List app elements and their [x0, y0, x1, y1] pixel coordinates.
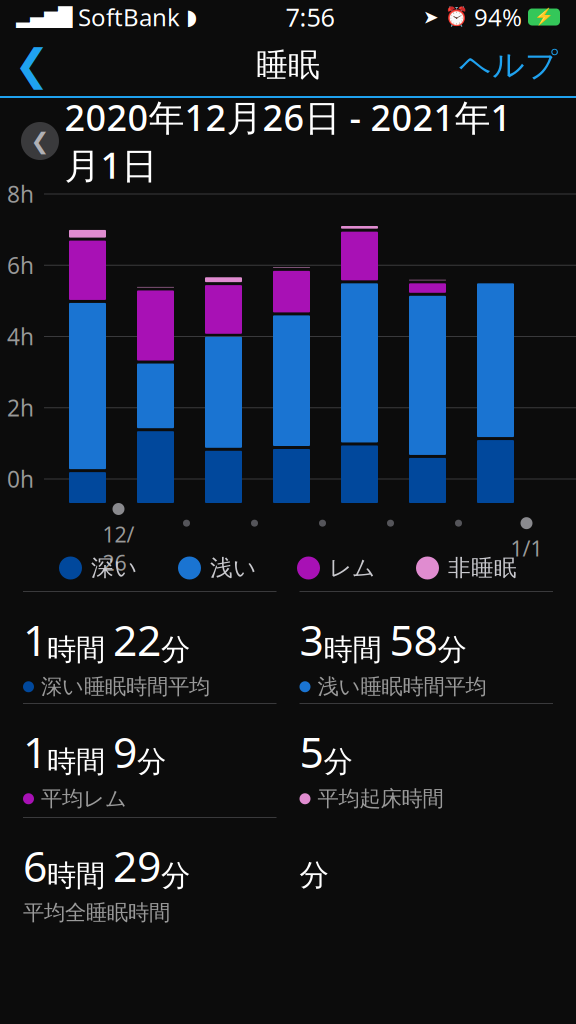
staticText: 12/26: [102, 520, 134, 577]
staticText: 9: [113, 723, 137, 780]
staticText: 時間: [47, 858, 105, 894]
staticText: レム: [329, 554, 375, 582]
staticText: SoftBank: [78, 1, 180, 33]
staticText: 浅い: [210, 554, 256, 582]
staticText: ❮: [14, 41, 50, 89]
staticText: 平均全睡眠時間: [23, 900, 170, 926]
staticText: 94%: [474, 1, 522, 33]
staticText: 3: [299, 611, 323, 668]
staticText: ◗: [186, 5, 197, 29]
staticText: 分: [161, 632, 190, 668]
staticText: 1/1: [510, 534, 542, 562]
staticText: 1: [23, 611, 47, 668]
staticText: 分: [299, 857, 328, 893]
staticText: 時間: [47, 632, 105, 668]
staticText: 分: [161, 858, 190, 894]
staticText: 分: [137, 744, 166, 780]
staticText: 分: [323, 744, 352, 780]
staticText: 8h: [7, 179, 34, 209]
button[interactable]: 戻る: [0, 38, 68, 92]
staticText: ヘルプ: [459, 45, 558, 85]
button[interactable]: ヘルプ: [459, 38, 576, 92]
staticText: 平均起床時間: [317, 786, 443, 812]
staticText: 6h: [7, 250, 34, 280]
staticText: 非睡眠: [448, 554, 517, 582]
staticText: ⚡: [534, 8, 554, 26]
staticText: [183, 532, 189, 560]
staticText: 4h: [7, 321, 34, 351]
staticText: ⏰: [445, 6, 468, 28]
staticText: 58: [389, 611, 437, 668]
staticText: 29: [113, 837, 161, 894]
staticText: ▂▄▆█: [16, 6, 72, 28]
staticText: 睡眠: [256, 45, 320, 85]
staticText: 0h: [7, 464, 34, 494]
staticText: 時間: [323, 632, 381, 668]
button[interactable]: 前の週: [21, 122, 59, 160]
staticText: 2020年12月26日 - 2021年1月1日: [64, 93, 511, 189]
staticText: 時間: [47, 744, 105, 780]
staticText: 深い睡眠時間平均: [41, 674, 210, 700]
staticText: 5: [299, 723, 323, 780]
staticText: 7:56: [285, 0, 334, 34]
staticText: 分: [437, 632, 466, 668]
staticText: 深い: [91, 554, 137, 582]
staticText: 6: [23, 837, 47, 894]
staticText: 浅い睡眠時間平均: [317, 674, 486, 700]
staticText: 22: [113, 611, 161, 668]
staticText: ➤: [423, 6, 439, 28]
staticText: 平均レム: [41, 786, 127, 812]
staticText: ❮: [30, 128, 49, 154]
staticText: 2h: [7, 393, 34, 423]
staticText: 1: [23, 723, 47, 780]
staticText: [455, 532, 461, 560]
